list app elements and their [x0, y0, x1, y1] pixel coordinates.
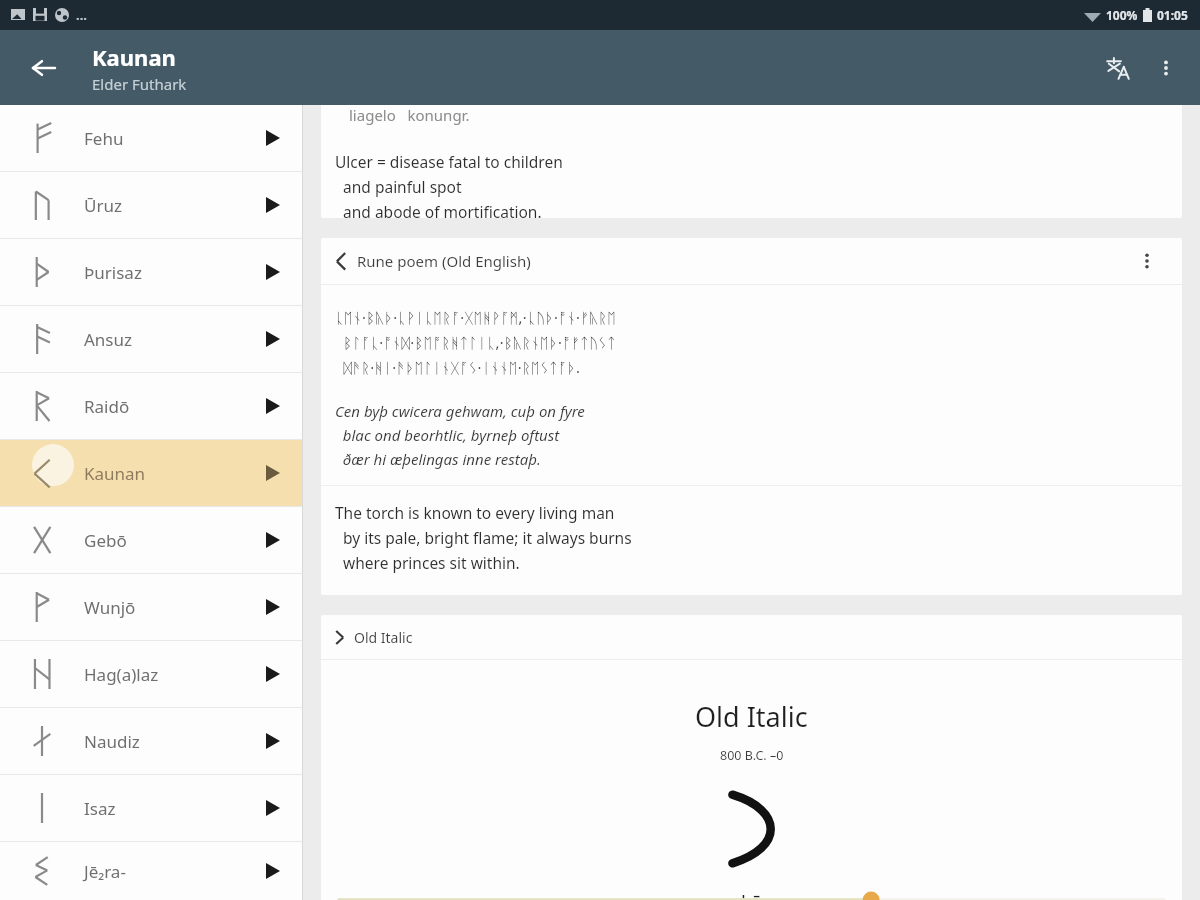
staticText: by its pale, bright flame; it always bur… — [335, 527, 632, 548]
staticText: Ulcer = disease fatal to children — [335, 151, 563, 172]
button[interactable]: Translate — [1094, 44, 1142, 92]
staticText: 100% — [1106, 7, 1138, 23]
button[interactable]: Ansuz — [0, 306, 302, 372]
staticText: 800 B.C. –0 — [720, 747, 784, 764]
staticText: where princes sit within. — [335, 552, 520, 573]
button[interactable]: Þurisaz — [0, 239, 302, 305]
staticText: Ansuz — [84, 328, 133, 351]
staticText: The torch is known to every living man — [335, 502, 615, 523]
staticText: Cen byþ cwicera gehwam, cuþ on fyre — [335, 401, 585, 421]
staticText: Þurisaz — [84, 261, 142, 284]
staticText: ᛞᚫᚱ·ᚻᛁ·ᚫᚦᛖᛚᛁᚾᚷᚪᛊ·ᛁᚾᚾᛖ·ᚱᛖᛊᛏᚪᚦ. — [335, 357, 581, 377]
staticText: ᛒᛚᚪᚳ·ᚩᚾᛞ·ᛒᛖᚩᚱᚻᛏᛚᛁᚳ,·ᛒᚣᚱᚾᛖᚦ·ᚩᚠᛏᚢᛊᛏ — [335, 332, 617, 352]
button[interactable]: Naudiz — [0, 708, 302, 774]
staticText: Kaunan — [92, 42, 176, 72]
staticText: blac ond beorhtlic, byrneþ oftust — [335, 425, 560, 445]
staticText: Kaunan — [84, 462, 146, 485]
button[interactable]: Isaz — [0, 775, 302, 841]
button[interactable]: Rune poem (Old English) — [321, 238, 1182, 284]
staticText: and painful spot — [335, 176, 462, 197]
button[interactable]: Wunjō — [0, 574, 302, 640]
staticText: 01:05 — [1157, 7, 1188, 23]
staticText: Naudiz — [84, 730, 140, 753]
button[interactable]: liagelo konungr. — [321, 105, 1182, 218]
button[interactable]: Fehu — [0, 105, 302, 171]
button[interactable]: Hag(a)laz — [0, 641, 302, 707]
staticText: kē — [741, 890, 762, 900]
staticText: Fehu — [84, 127, 124, 150]
staticText: Wunjō — [84, 596, 136, 619]
staticText: ðær hi æþelingas inne restaþ. — [335, 449, 541, 469]
button[interactable]: Raidō — [0, 373, 302, 439]
button[interactable]: Kaunan — [0, 440, 302, 506]
button[interactable]: Ūruz — [0, 172, 302, 238]
staticText: Rune poem (Old English) — [357, 251, 531, 271]
staticText: ᚳᛖᚾ·ᛒᚣᚦ·ᚳᚹᛁᚳᛖᚱᚪ·ᚷᛖᚻᚹᚪᛗ,·ᚳᚢᚦ·ᚩᚾ·ᚠᚣᚱᛖ — [335, 307, 617, 327]
staticText: Elder Futhark — [92, 74, 187, 94]
staticText: Hag(a)laz — [84, 663, 159, 686]
staticText: and abode of mortification. — [335, 201, 542, 218]
staticText: Old Italic — [695, 698, 808, 735]
button[interactable]: Jē₂ra- — [0, 842, 302, 900]
staticText: Old Italic — [354, 628, 413, 647]
button[interactable]: Old Italic — [321, 615, 1182, 659]
staticText: Jē₂ra- — [84, 860, 126, 883]
button[interactable]: Gebō — [0, 507, 302, 573]
staticText: liagelo konungr. — [349, 105, 470, 125]
staticText: Ūruz — [84, 194, 122, 217]
staticText: Gebō — [84, 529, 127, 552]
button[interactable]: More options — [1142, 44, 1190, 92]
staticText: Raidō — [84, 395, 130, 418]
staticText: ... — [76, 6, 87, 24]
staticText: Isaz — [84, 797, 116, 820]
button[interactable]: Back — [22, 46, 66, 90]
button[interactable]: Card options — [1130, 244, 1164, 278]
